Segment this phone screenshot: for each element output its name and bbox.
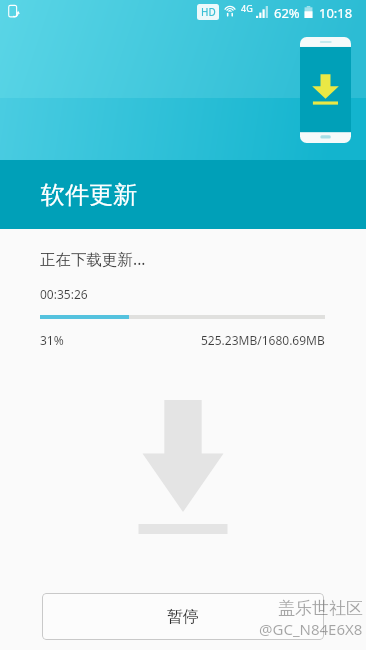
button[interactable]: 暂停 xyxy=(42,593,324,640)
staticText: 525.23MB/1680.69MB xyxy=(201,332,325,348)
staticText: @GC_N84E6X8 xyxy=(259,619,363,639)
staticText: 00:35:26 xyxy=(40,286,88,302)
staticText: HD xyxy=(201,5,216,19)
staticText: 盖乐世社区 xyxy=(278,598,363,619)
other: Smart View xyxy=(8,5,20,18)
staticText: 4G xyxy=(241,2,253,14)
staticText: 暂停 xyxy=(167,607,199,627)
staticText: 10:18 xyxy=(319,4,353,22)
staticText: 31% xyxy=(40,332,64,348)
staticText: 62% xyxy=(274,4,300,22)
staticText: 软件更新 xyxy=(41,180,137,210)
staticText: 正在下载更新... xyxy=(40,248,146,269)
